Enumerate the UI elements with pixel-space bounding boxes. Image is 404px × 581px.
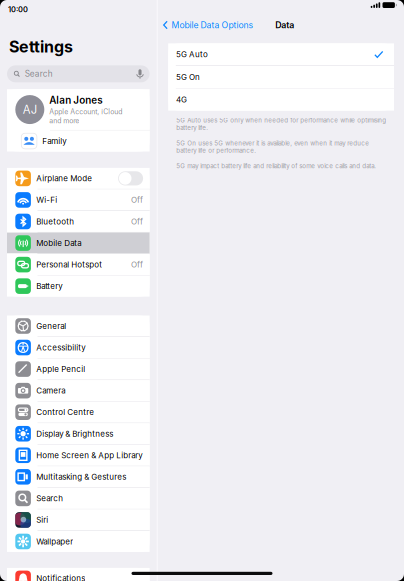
staticText: Wallpaper (36, 537, 73, 546)
button[interactable]: 5G Auto (168, 43, 394, 65)
staticText: Camera (36, 386, 65, 395)
button[interactable]: General (7, 315, 150, 336)
staticText: Airplane Mode (36, 173, 92, 183)
button[interactable]: Control Centre (7, 402, 150, 423)
staticText: Apple Account, iCloud (49, 107, 122, 116)
staticText: Battery (36, 281, 62, 291)
button[interactable]: Battery (7, 276, 150, 297)
button[interactable]: Camera (7, 380, 150, 401)
button[interactable]: Mobile Data Options (163, 17, 253, 33)
staticText: Alan Jones (49, 94, 102, 106)
button[interactable]: Family (7, 131, 150, 151)
staticText: Display & Brightness (36, 429, 113, 439)
staticText: 4G (176, 95, 187, 104)
button[interactable]: Display & Brightness (7, 423, 150, 444)
button[interactable]: Home Screen & App Library (7, 445, 150, 466)
staticText: General (36, 321, 66, 331)
button[interactable]: Siri (7, 509, 150, 530)
staticText: Multitasking & Gestures (36, 472, 126, 482)
staticText: Search (36, 493, 63, 503)
button[interactable]: Apple Pencil (7, 359, 150, 379)
button[interactable]: Multitasking & Gestures (7, 466, 150, 487)
button[interactable]: Notifications (7, 568, 150, 581)
staticText: Home Screen & App Library (36, 450, 142, 460)
button[interactable]: 4G (168, 89, 394, 111)
staticText: Siri (36, 515, 48, 525)
staticText: Search (25, 69, 53, 79)
button[interactable]: Wallpaper (7, 531, 150, 552)
staticText: Off (131, 195, 143, 205)
staticText: Mobile Data Options (171, 20, 253, 30)
button[interactable]: Bluetooth (7, 211, 150, 232)
button[interactable]: Airplane Mode (7, 168, 150, 189)
staticText: 5G On (176, 72, 200, 82)
staticText: Accessibility (36, 343, 85, 352)
staticText: 5G Auto (176, 50, 208, 59)
button[interactable]: Wi-Fi (7, 189, 150, 210)
button[interactable]: Accessibility (7, 337, 150, 358)
staticText: Apple Pencil (36, 364, 85, 374)
staticText: Personal Hotspot (36, 260, 102, 269)
staticText: Mobile Data (36, 238, 81, 248)
staticText: 5G may impact battery life and reliabili… (176, 162, 376, 170)
staticText: Data (275, 20, 294, 30)
button[interactable]: Personal Hotspot (7, 254, 150, 275)
staticText: 5G On uses 5G whenever it is available, … (176, 139, 369, 154)
staticText: Off (131, 217, 143, 226)
staticText: Off (131, 260, 143, 269)
staticText: AJ (23, 103, 37, 116)
staticText: and more (49, 116, 79, 125)
button[interactable]: AJ (7, 89, 150, 130)
staticText: Bluetooth (36, 217, 74, 226)
staticText: Notifications (36, 574, 85, 581)
button[interactable]: 5G On (168, 66, 394, 88)
staticText: Settings (9, 37, 73, 56)
staticText: Wi-Fi (36, 195, 57, 205)
staticText: 5G Auto uses 5G only when needed for per… (176, 117, 386, 131)
staticText: Control Centre (36, 407, 94, 417)
button[interactable]: Search (7, 488, 150, 509)
button[interactable]: Mobile Data (7, 233, 150, 253)
staticText: 10:00 (8, 5, 28, 14)
staticText: Family (42, 136, 66, 146)
